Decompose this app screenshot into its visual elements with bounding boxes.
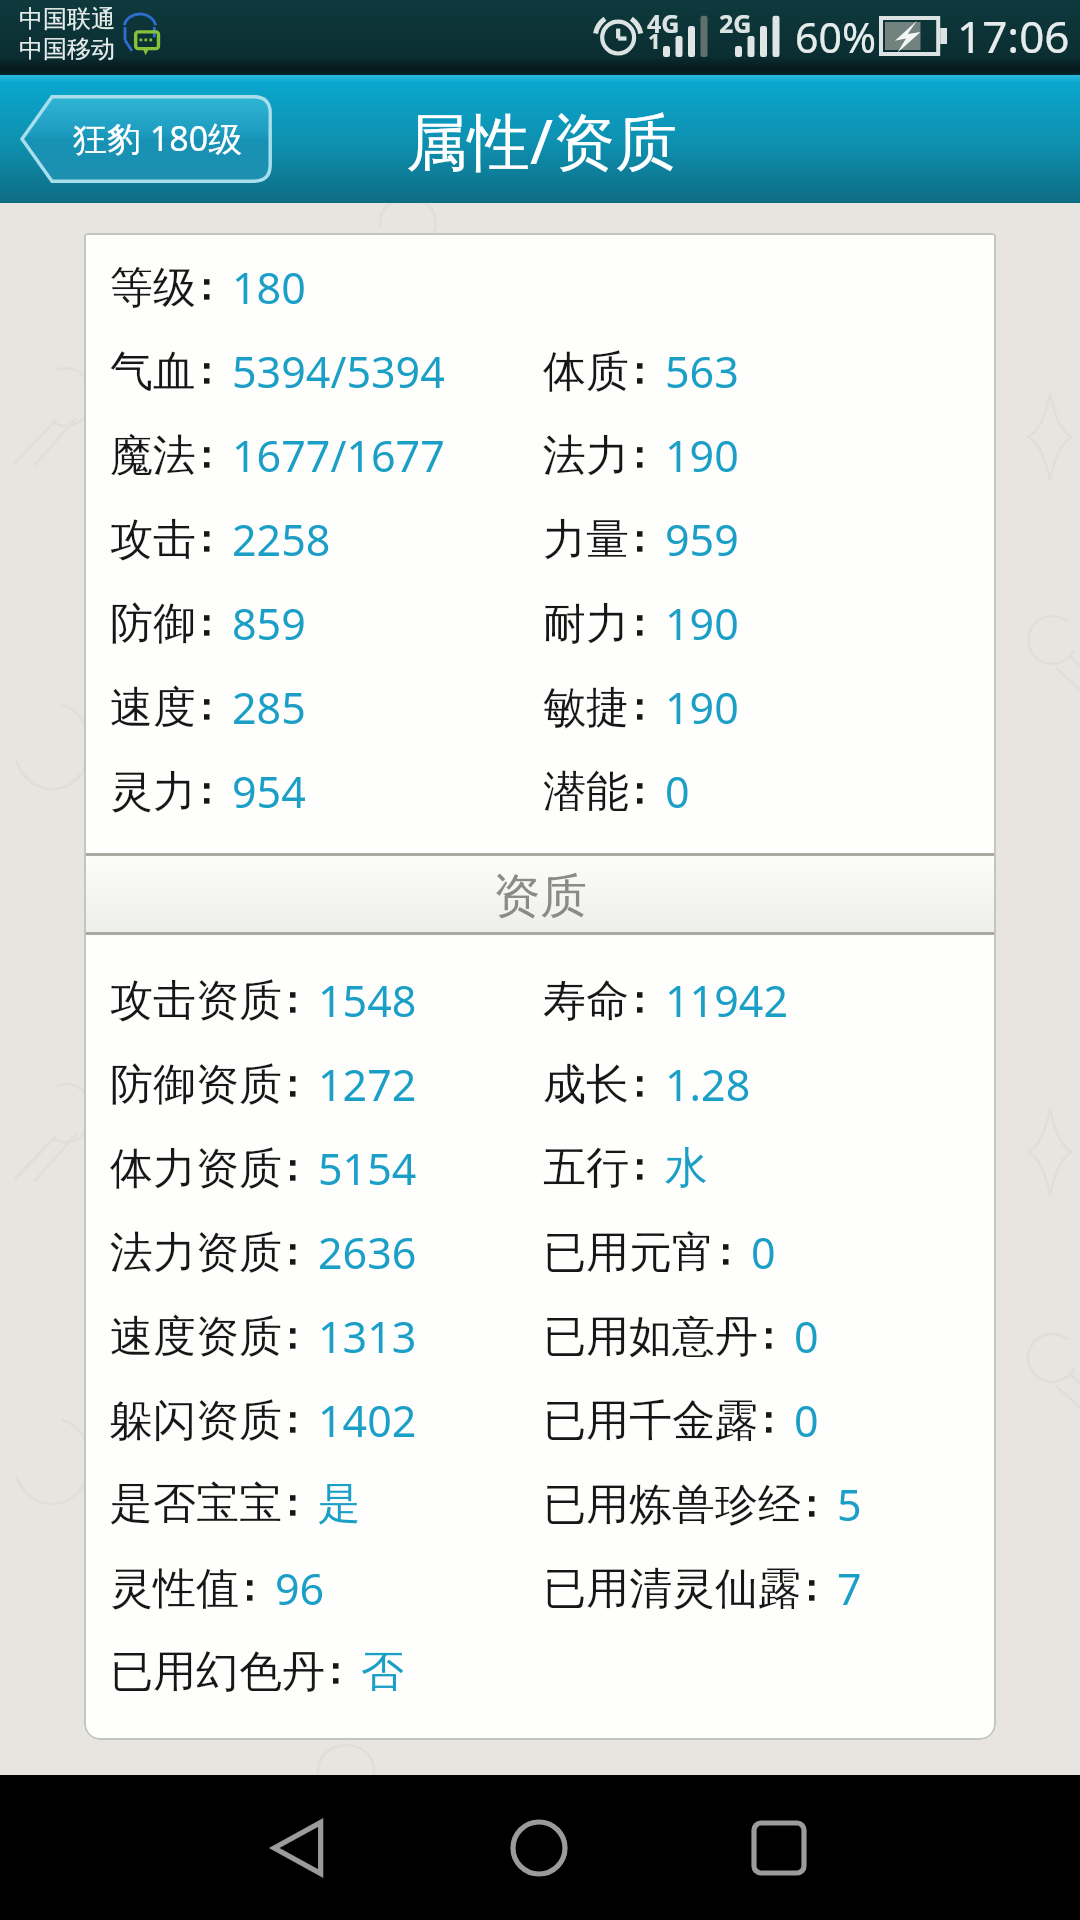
staticText: 1402 [318,1391,417,1450]
staticText: 180 [232,258,306,317]
staticText: 959 [665,510,739,569]
staticText: 60% [795,9,876,65]
staticText: 魔法 [110,429,196,483]
staticText: 285 [232,678,306,737]
button[interactable]: Home [419,1775,659,1920]
staticText: 1548 [318,971,417,1030]
staticText: 已用千金露 [543,1394,758,1448]
staticText: 攻击资质 [110,974,282,1028]
staticText: 防御 [110,597,196,651]
staticText: 中国移动 [19,34,115,64]
staticText: 190 [665,678,739,737]
staticText: 中国联通 [19,4,115,34]
staticText: 1 [648,25,661,55]
staticText: 敏捷 [543,681,629,735]
staticText: 否 [361,1645,404,1699]
staticText: 是否宝宝 [110,1477,282,1531]
staticText: 属性/资质 [406,98,678,183]
staticText: 7 [837,1559,862,1618]
staticText: 4G [647,6,680,40]
staticText: 1313 [318,1307,417,1366]
staticText: 气血 [110,345,196,399]
staticText: 11942 [665,971,788,1030]
staticText: 躲闪资质 [110,1394,282,1448]
staticText: 已用炼兽珍经 [543,1478,801,1532]
staticText: 潜能 [543,765,629,819]
staticText: 寿命 [543,974,629,1028]
staticText: 0 [751,1223,776,1282]
staticText: 1272 [318,1055,417,1114]
staticText: 190 [665,594,739,653]
staticText: 攻击 [110,513,196,567]
button[interactable]: 狂豹 180级 [20,95,272,183]
staticText: 法力 [543,429,629,483]
staticText: 563 [665,342,739,401]
staticText: 0 [794,1391,819,1450]
staticText: 体质 [543,345,629,399]
staticText: 体力资质 [110,1142,282,1196]
staticText: 5394/5394 [232,342,445,401]
staticText: 0 [665,762,690,821]
staticText: 法力资质 [110,1226,282,1280]
staticText: 狂豹 180级 [73,115,243,161]
staticText: 耐力 [543,597,629,651]
staticText: 资质 [493,867,587,926]
staticText: 1.28 [665,1055,751,1114]
button[interactable]: Back [178,1775,418,1920]
staticText: 190 [665,426,739,485]
staticText: 速度 [110,681,196,735]
staticText: 防御资质 [110,1058,282,1112]
staticText: 2636 [318,1223,417,1282]
staticText: 已用元宵 [543,1226,715,1280]
staticText: 17:06 [957,6,1070,66]
staticText: 2258 [232,510,331,569]
staticText: 灵性值 [110,1562,239,1616]
staticText: 五行 [543,1141,629,1195]
staticText: 成长 [543,1058,629,1112]
staticText: 速度资质 [110,1310,282,1364]
staticText: 已用幻色丹 [110,1645,325,1699]
staticText: 等级 [110,261,196,315]
staticText: 2G [719,6,752,40]
staticText: 是 [318,1477,361,1531]
staticText: 力量 [543,513,629,567]
staticText: 已用清灵仙露 [543,1562,801,1616]
staticText: 954 [232,762,306,821]
staticText: 水 [665,1141,708,1195]
staticText: 5 [837,1475,862,1534]
staticText: 859 [232,594,306,653]
staticText: 5154 [318,1139,417,1198]
staticText: 已用如意丹 [543,1310,758,1364]
staticText: 0 [794,1307,819,1366]
staticText: 1677/1677 [232,426,445,485]
staticText: 96 [275,1559,325,1618]
staticText: 灵力 [110,765,196,819]
button[interactable]: Recents [659,1775,899,1920]
